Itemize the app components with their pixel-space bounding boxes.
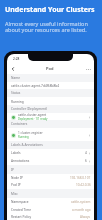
- button[interactable]: Back: [9, 65, 17, 73]
- button[interactable]: Node IP: [11, 174, 91, 182]
- staticText: Node IP: [11, 176, 23, 180]
- staticText: IP: [11, 168, 15, 172]
- staticText: Pod: [46, 66, 54, 71]
- button[interactable]: Annotations: [11, 157, 91, 165]
- staticText: Created Time: [11, 208, 31, 212]
- button[interactable]: Namespace: [11, 198, 91, 206]
- button[interactable]: Labels: [11, 149, 91, 157]
- staticText: Containers: [11, 122, 28, 126]
- staticText: Almost every useful information about yo…: [5, 20, 88, 34]
- button[interactable]: cattle-cluster-agent: [11, 113, 91, 121]
- staticText: Labels & Annotations: [11, 143, 43, 147]
- staticText: Namespace: [11, 200, 29, 204]
- button[interactable]: Created Time: [11, 206, 91, 214]
- staticText: Controller (Deployment): [11, 107, 48, 111]
- staticText: 4: [85, 151, 87, 155]
- staticText: Name: [11, 76, 20, 80]
- staticText: Status: [11, 91, 21, 95]
- staticText: cattle-system: [71, 200, 91, 204]
- button[interactable]: 1 cluster-register: [11, 128, 91, 142]
- staticText: cattle-cluster-agent-7d4f68b8b4: [11, 84, 60, 88]
- staticText: 6: [85, 159, 87, 163]
- staticText: Pod IP: [11, 183, 21, 187]
- staticText: 1 cluster-register: [18, 131, 43, 135]
- staticText: 2:28: [13, 57, 20, 61]
- staticText: Annotations: [11, 159, 30, 163]
- staticText: Understand Your Clusters: [5, 5, 95, 15]
- button[interactable]: More options: [84, 65, 92, 73]
- staticText: Misc: [11, 192, 18, 196]
- staticText: a month ago: [72, 208, 91, 212]
- staticText: cattle-cluster-agent: [18, 113, 47, 117]
- staticText: Labels: [11, 151, 21, 155]
- staticText: Running: [11, 100, 24, 104]
- staticText: Always: [80, 215, 91, 219]
- staticText: 10.42.0.36: [76, 183, 91, 187]
- button[interactable]: Restart Policy: [11, 213, 91, 220]
- staticText: Restart Policy: [11, 215, 32, 219]
- staticText: Deployment · 1/1 ready: [18, 117, 48, 121]
- button[interactable]: Pod IP: [11, 181, 91, 189]
- staticText: Running: [18, 135, 29, 139]
- staticText: 192.168.0.107: [70, 176, 91, 180]
